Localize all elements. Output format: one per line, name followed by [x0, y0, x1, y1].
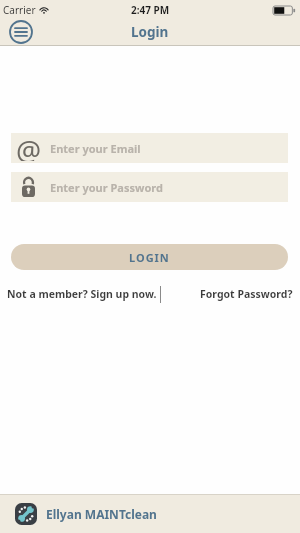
staticText: LOGIN	[129, 250, 170, 265]
staticText: Enter your Password	[50, 180, 163, 195]
staticText: Ellyan MAINTclean	[46, 506, 157, 522]
staticText: Enter your Email	[50, 141, 141, 156]
button[interactable]	[9, 20, 33, 44]
button[interactable]: LOGIN	[11, 244, 288, 270]
button[interactable]: Ellyan MAINTclean	[15, 503, 157, 525]
button[interactable]: Enter your Password	[11, 172, 288, 202]
staticText: 2:47 PM	[131, 3, 170, 17]
button[interactable]: Not a member? Sign up now.	[7, 287, 157, 301]
staticText: Carrier	[3, 3, 36, 17]
staticText: Login	[131, 23, 169, 41]
staticText: @	[16, 131, 42, 161]
button[interactable]: @	[11, 133, 288, 163]
button[interactable]: Forgot Password?	[200, 287, 293, 301]
